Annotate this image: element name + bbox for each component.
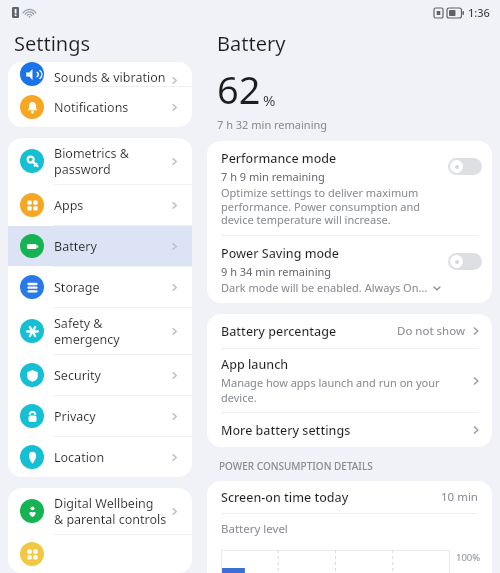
staticText: Dark mode will be enabled. Always On… — [221, 280, 428, 295]
staticText: More battery settings — [221, 422, 351, 439]
staticText: 62 — [217, 63, 261, 115]
staticText: 10 min — [441, 489, 478, 505]
button[interactable]: Storage — [8, 267, 192, 307]
staticText: 9 h 34 min remaining — [221, 264, 332, 279]
button[interactable]: More battery settings — [207, 413, 492, 447]
staticText: 100% — [456, 551, 481, 564]
staticText: Sounds & vibration — [54, 69, 169, 86]
staticText: 7 h 32 min remaining — [217, 117, 328, 132]
staticText: Screen-on time today — [221, 489, 441, 506]
staticText: Storage — [54, 279, 169, 296]
button[interactable]: Battery percentage — [207, 314, 492, 348]
staticText: Power Saving mode — [221, 245, 340, 262]
staticText: Privacy — [54, 408, 169, 425]
button[interactable]: Safety & emergency — [8, 308, 192, 354]
staticText: Biometrics & password — [54, 145, 169, 177]
button[interactable]: Notifications — [8, 87, 192, 127]
button[interactable]: Location — [8, 437, 192, 477]
staticText: Settings — [14, 30, 91, 57]
staticText: Notifications — [54, 99, 169, 116]
staticText: Battery level — [221, 521, 288, 537]
button[interactable] — [8, 535, 192, 573]
staticText: Location — [54, 449, 169, 466]
staticText: 7 h 9 min remaining — [221, 169, 325, 184]
button[interactable]: Apps — [8, 185, 192, 225]
staticText: 1:36 — [468, 5, 490, 20]
button[interactable]: Privacy — [8, 396, 192, 436]
staticText: Digital Wellbeing & parental controls — [54, 495, 169, 527]
staticText: Battery — [217, 30, 286, 57]
button[interactable]: App launch — [207, 349, 492, 412]
button[interactable]: Digital Wellbeing & parental controls — [8, 488, 192, 534]
button[interactable]: Battery — [8, 226, 192, 266]
staticText: Performance mode — [221, 150, 337, 167]
button[interactable]: Toggle mode — [448, 158, 482, 175]
staticText: App launch — [221, 356, 289, 373]
staticText: Optimize settings to deliver maximum per… — [221, 185, 421, 227]
staticText: Manage how apps launch and run on your d… — [221, 375, 470, 405]
staticText: Do not show — [397, 323, 465, 339]
staticText: Security — [54, 367, 169, 384]
staticText: Battery — [54, 238, 169, 255]
button[interactable]: Toggle mode — [448, 253, 482, 270]
button[interactable]: Security — [8, 355, 192, 395]
button[interactable]: Sounds & vibration — [8, 62, 192, 86]
staticText: Apps — [54, 197, 169, 214]
button[interactable]: Power Saving mode — [207, 236, 492, 303]
staticText: % — [263, 90, 276, 110]
staticText: POWER CONSUMPTION DETAILS — [219, 459, 373, 473]
button[interactable]: Biometrics & password — [8, 138, 192, 184]
button[interactable]: Screen-on time today — [207, 481, 492, 513]
button[interactable]: Performance mode — [207, 141, 492, 235]
staticText: Battery percentage — [221, 323, 337, 340]
staticText: Safety & emergency — [54, 315, 169, 347]
